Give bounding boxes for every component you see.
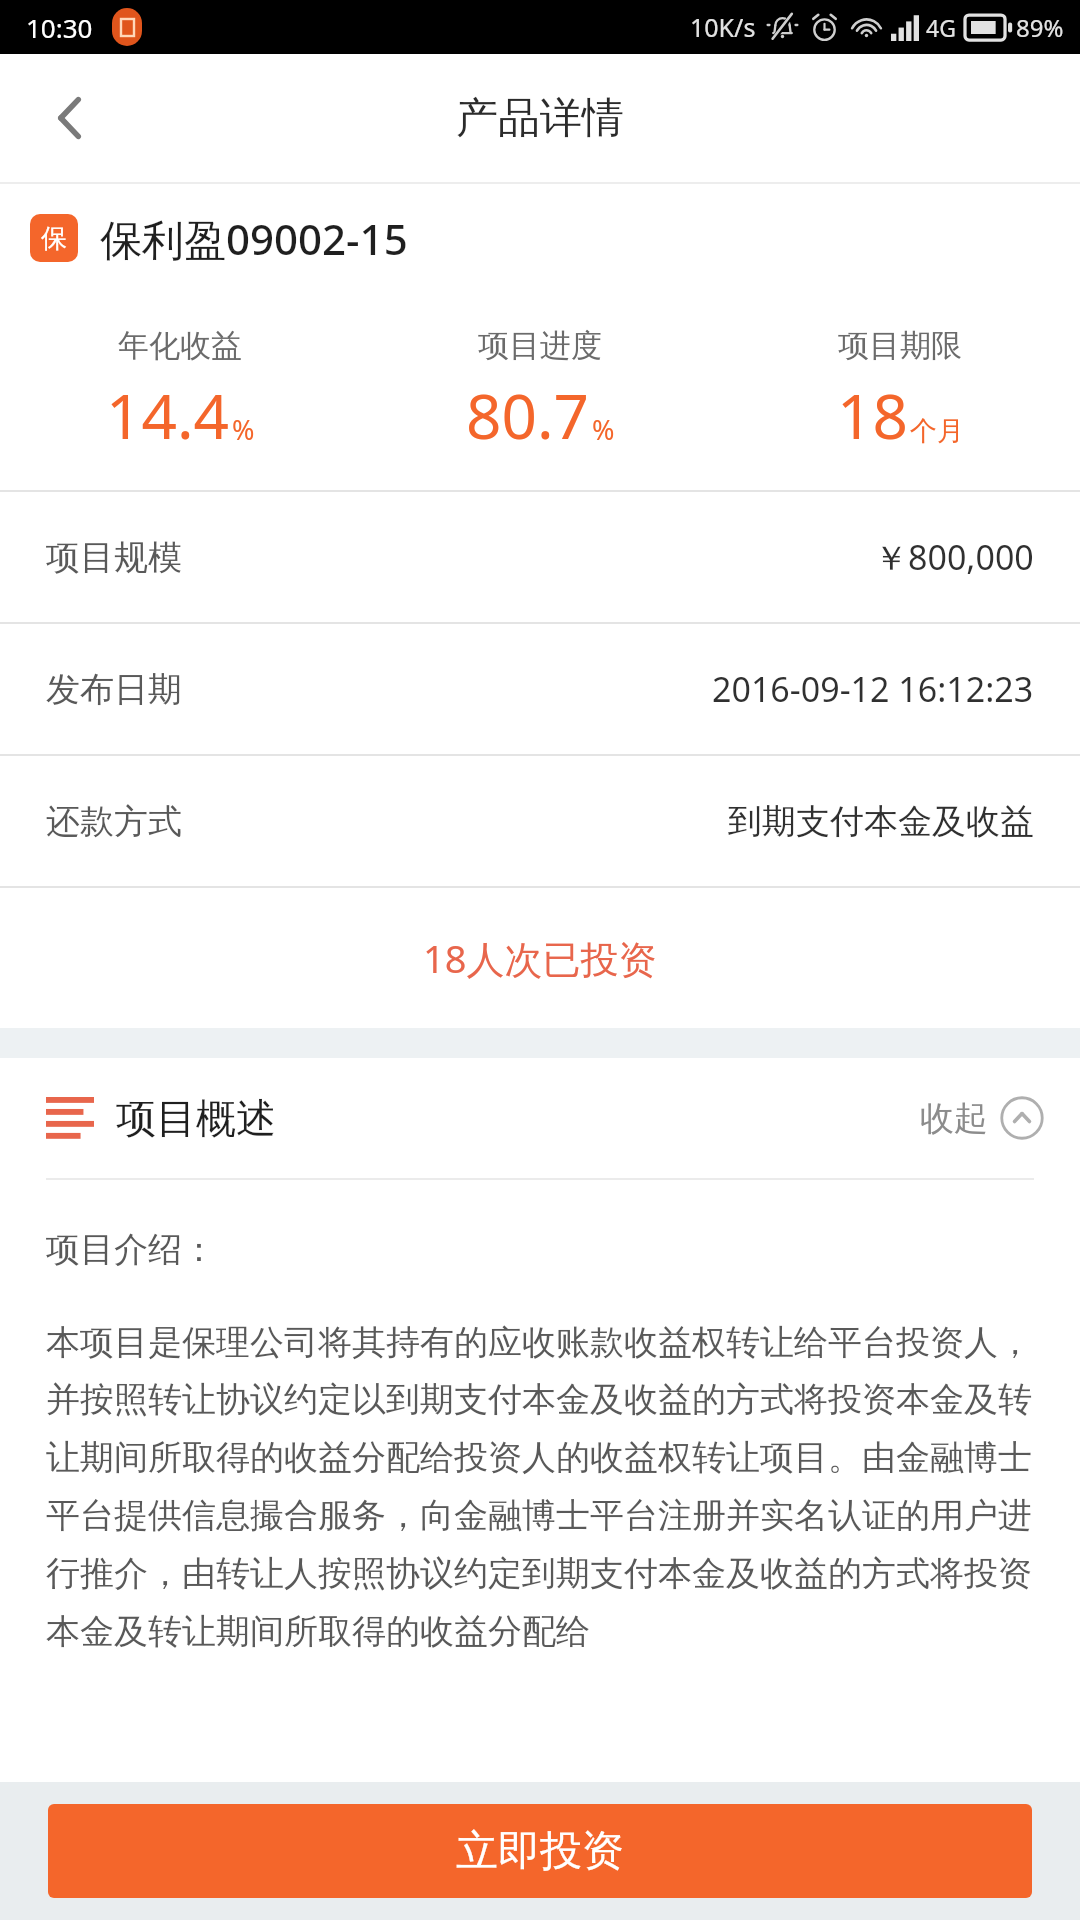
staticText: 14.4 — [106, 373, 230, 457]
staticText: 到期支付本金及收益 — [728, 800, 1034, 843]
staticText: ￥800,000 — [874, 534, 1034, 580]
staticText: 89% — [1016, 11, 1064, 44]
staticText: 18 — [837, 373, 908, 457]
staticText: 产品详情 — [456, 92, 624, 145]
staticText: 80.7 — [466, 373, 590, 457]
staticText: 本项目是保理公司将其持有的应收账款收益权转让给平台投资人，并按照转让协议约定以到… — [46, 1321, 1034, 1653]
button[interactable]: 发布日期 — [0, 624, 1080, 754]
staticText: 项目规模 — [46, 536, 182, 579]
staticText: 10K/s — [690, 10, 756, 44]
staticText: 年化收益 — [118, 326, 242, 365]
button[interactable]: 还款方式 — [0, 756, 1080, 886]
staticText: 发布日期 — [46, 668, 182, 711]
staticText: 项目概述 — [116, 1093, 276, 1143]
button[interactable]: 项目规模 — [0, 492, 1080, 622]
staticText: 保利盈09002-15 — [100, 210, 408, 267]
staticText: 4G — [926, 12, 956, 43]
staticText: 项目期限 — [838, 326, 962, 365]
button[interactable]: 收起 — [920, 1096, 1044, 1140]
staticText: % — [232, 411, 255, 448]
staticText: 2016-09-12 16:12:23 — [712, 666, 1034, 712]
staticText: 项目介绍： — [46, 1228, 216, 1271]
button[interactable]: 立即投资 — [48, 1804, 1032, 1898]
button[interactable]: Back — [28, 76, 112, 160]
staticText: 18人次已投资 — [423, 932, 657, 984]
staticText: 项目进度 — [478, 326, 602, 365]
staticText: 收起 — [920, 1097, 988, 1140]
staticText: 还款方式 — [46, 800, 182, 843]
staticText: % — [592, 411, 615, 448]
staticText: 10:30 — [26, 10, 93, 45]
staticText: 立即投资 — [456, 1825, 624, 1878]
staticText: 保 — [41, 222, 67, 255]
staticText: 个月 — [910, 414, 964, 448]
